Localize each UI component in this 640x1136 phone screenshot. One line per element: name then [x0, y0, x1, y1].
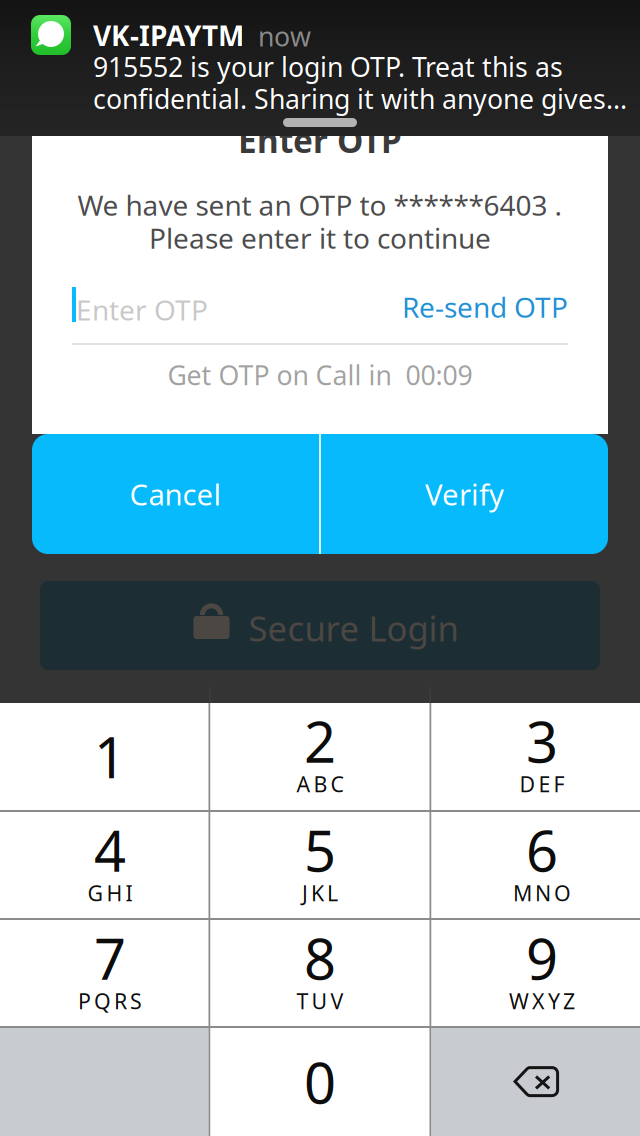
- button[interactable]: 9: [431, 920, 640, 1026]
- button[interactable]: 1: [0, 703, 208, 810]
- staticText: 4: [94, 813, 126, 887]
- staticText: We have sent an OTP to ******6403 .: [77, 186, 562, 224]
- staticText: 3: [526, 704, 558, 778]
- button[interactable]: 4: [0, 812, 208, 918]
- button[interactable]: Verify: [321, 434, 608, 554]
- staticText: VK-IPAYTM: [93, 17, 244, 54]
- staticText: JKL: [302, 879, 338, 907]
- staticText: Re-send OTP: [402, 288, 568, 326]
- button[interactable]: 3: [431, 703, 640, 810]
- button[interactable]: 7: [0, 920, 208, 1026]
- staticText: confidential. Sharing it with anyone giv…: [93, 81, 627, 116]
- staticText: Get OTP on Call in 00:09: [167, 357, 472, 393]
- staticText: 7: [94, 921, 126, 995]
- staticText: Verify: [425, 474, 504, 513]
- staticText: 6: [526, 813, 558, 887]
- button[interactable]: 8: [210, 920, 429, 1026]
- staticText: Cancel: [129, 474, 221, 513]
- staticText: 9: [526, 921, 558, 995]
- staticText: ABC: [296, 770, 343, 798]
- staticText: 2: [304, 704, 336, 778]
- staticText: PQRS: [78, 987, 142, 1015]
- staticText: Enter OTP: [76, 291, 208, 328]
- staticText: now: [258, 18, 311, 54]
- staticText: 8: [304, 921, 336, 995]
- staticText: MNO: [513, 879, 571, 907]
- staticText: Secure Login: [248, 605, 458, 651]
- button[interactable]: 2: [210, 703, 429, 810]
- staticText: WXYZ: [509, 987, 575, 1015]
- staticText: 915552 is your login OTP. Treat this as: [93, 49, 563, 84]
- button[interactable]: Secure Login: [40, 581, 600, 670]
- button[interactable]: 5: [210, 812, 429, 918]
- button[interactable]: 6: [431, 812, 640, 918]
- button[interactable]: Re-send OTP: [388, 283, 568, 331]
- staticText: Enter OTP: [238, 118, 402, 162]
- staticText: GHI: [87, 879, 132, 907]
- button[interactable]: 0: [210, 1028, 429, 1136]
- staticText: 5: [304, 813, 336, 887]
- button[interactable]: Delete: [431, 1028, 640, 1136]
- staticText: TUV: [296, 987, 343, 1015]
- button[interactable]: Cancel: [32, 434, 319, 554]
- staticText: DEF: [519, 770, 564, 798]
- staticText: Please enter it to continue: [149, 219, 491, 257]
- staticText: 1: [94, 719, 126, 794]
- staticText: 0: [304, 1045, 336, 1119]
